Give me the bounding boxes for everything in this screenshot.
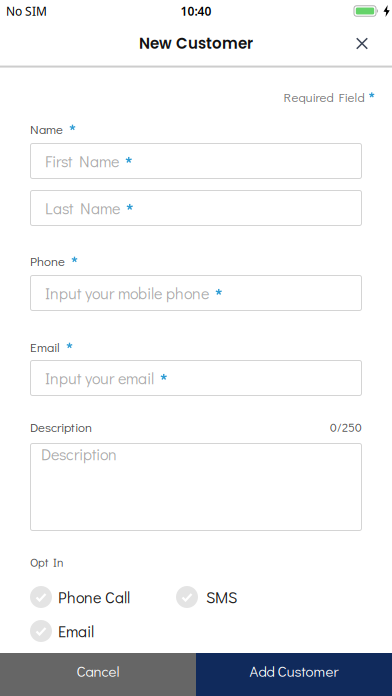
button[interactable]: Cancel: [0, 653, 196, 696]
button[interactable]: Phone Call: [30, 586, 130, 608]
button[interactable]: Email: [30, 620, 94, 642]
button[interactable]: Input your email: [30, 360, 362, 396]
staticText: New Customer: [139, 33, 253, 54]
staticText: 0/250: [330, 419, 362, 435]
staticText: Email: [58, 620, 94, 641]
button[interactable]: First Name: [30, 143, 362, 179]
staticText: No SIM: [6, 3, 47, 19]
button[interactable]: Input your mobile phone: [30, 275, 362, 311]
button[interactable]: Last Name: [30, 190, 362, 226]
staticText: Phone Call: [58, 586, 130, 607]
staticText: Description: [41, 443, 117, 464]
staticText: SMS: [206, 586, 237, 607]
staticText: 10:40: [180, 3, 211, 19]
staticText: Cancel: [76, 661, 119, 681]
button[interactable]: Close: [348, 29, 376, 57]
staticText: Last Name: [45, 197, 120, 218]
button[interactable]: Add Customer: [196, 653, 392, 696]
staticText: Phone: [30, 252, 65, 269]
staticText: Email: [30, 338, 60, 355]
staticText: Opt In: [30, 554, 63, 570]
button[interactable]: Description: [30, 443, 362, 531]
staticText: Required Field: [283, 88, 364, 105]
button[interactable]: SMS: [176, 586, 237, 608]
staticText: Description: [30, 418, 92, 435]
staticText: Name: [30, 120, 63, 137]
staticText: First Name: [45, 150, 119, 171]
staticText: Input your mobile phone: [45, 282, 209, 303]
staticText: Add Customer: [249, 661, 338, 681]
staticText: Input your email: [45, 367, 154, 388]
